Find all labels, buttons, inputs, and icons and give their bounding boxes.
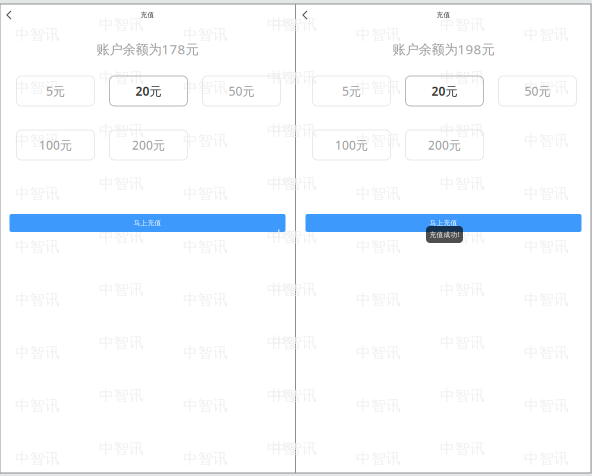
staticText: 中智讯 — [267, 386, 312, 404]
staticText: 中智讯 — [99, 333, 144, 351]
button[interactable]: 5元 — [16, 76, 94, 106]
staticText: 中智讯 — [99, 68, 144, 86]
staticText: 中智讯 — [183, 131, 228, 149]
staticText: 50元 — [524, 83, 550, 99]
staticText: 中智讯 — [440, 333, 485, 351]
button[interactable]: 200元 — [405, 130, 483, 160]
staticText: 中智讯 — [267, 121, 312, 139]
staticText: 50元 — [228, 83, 254, 99]
staticText: 中智讯 — [272, 68, 317, 86]
staticText: 中智讯 — [15, 131, 60, 149]
staticText: 中智讯 — [440, 68, 485, 86]
staticText: 中智讯 — [524, 184, 569, 202]
staticText: 中智讯 — [524, 78, 569, 96]
staticText: 中智讯 — [524, 449, 569, 467]
staticText: 充值 — [140, 11, 154, 19]
staticText: 中智讯 — [272, 280, 317, 298]
button[interactable]: 50元 — [498, 76, 576, 106]
button[interactable]: 20元 — [109, 76, 187, 106]
staticText: 中智讯 — [183, 78, 228, 96]
staticText: 100元 — [335, 137, 368, 153]
staticText: 中智讯 — [99, 386, 144, 404]
staticText: 中智讯 — [356, 25, 401, 43]
staticText: 充值成功! — [429, 230, 459, 239]
staticText: 中智讯 — [15, 396, 60, 414]
button[interactable]: 50元 — [202, 76, 280, 106]
staticText: 20元 — [135, 83, 161, 99]
button[interactable]: 200元 — [109, 130, 187, 160]
staticText: 账户余额为178元 — [96, 40, 198, 58]
button[interactable]: 100元 — [312, 130, 390, 160]
staticText: 中智讯 — [356, 78, 401, 96]
button[interactable]: Back — [0, 6, 18, 24]
staticText: 中智讯 — [15, 237, 60, 255]
staticText: 中智讯 — [440, 174, 485, 192]
staticText: 200元 — [132, 137, 165, 153]
staticText: 中智讯 — [440, 280, 485, 298]
staticText: 充值 — [436, 11, 450, 19]
button[interactable]: 马上充值 — [305, 214, 581, 232]
staticText: 中智讯 — [99, 121, 144, 139]
staticText: 中智讯 — [99, 227, 144, 245]
staticText: 中智讯 — [351, 290, 396, 308]
staticText: 中智讯 — [356, 290, 401, 308]
staticText: 中智讯 — [351, 343, 396, 361]
staticText: 中智讯 — [15, 343, 60, 361]
staticText: 马上充值 — [133, 219, 161, 227]
staticText: 中智讯 — [267, 174, 312, 192]
staticText: 中智讯 — [356, 449, 401, 467]
staticText: 20元 — [431, 83, 457, 99]
staticText: 中智讯 — [183, 343, 228, 361]
staticText: 5元 — [342, 83, 361, 99]
staticText: 中智讯 — [272, 174, 317, 192]
staticText: 中智讯 — [351, 78, 396, 96]
staticText: 中智讯 — [15, 25, 60, 43]
staticText: 中智讯 — [440, 15, 485, 33]
staticText: 中智讯 — [267, 280, 312, 298]
staticText: 中智讯 — [267, 15, 312, 33]
staticText: 中智讯 — [356, 131, 401, 149]
staticText: 中智讯 — [440, 386, 485, 404]
button[interactable]: 20元 — [405, 76, 483, 106]
staticText: 中智讯 — [99, 280, 144, 298]
staticText: 中智讯 — [356, 343, 401, 361]
button[interactable]: Back — [296, 6, 314, 24]
staticText: 中智讯 — [183, 290, 228, 308]
staticText: 200元 — [428, 137, 461, 153]
staticText: 中智讯 — [15, 78, 60, 96]
staticText: 账户余额为198元 — [392, 40, 494, 58]
staticText: 中智讯 — [272, 333, 317, 351]
staticText: 中智讯 — [524, 343, 569, 361]
staticText: 中智讯 — [15, 449, 60, 467]
staticText: 中智讯 — [267, 227, 312, 245]
button[interactable]: 100元 — [16, 130, 94, 160]
staticText: 中智讯 — [272, 227, 317, 245]
staticText: 中智讯 — [524, 237, 569, 255]
staticText: 中智讯 — [272, 121, 317, 139]
staticText: 中智讯 — [351, 237, 396, 255]
staticText: 中智讯 — [272, 439, 317, 457]
staticText: 中智讯 — [183, 237, 228, 255]
staticText: 中智讯 — [15, 290, 60, 308]
button[interactable]: 5元 — [312, 76, 390, 106]
staticText: 中智讯 — [183, 25, 228, 43]
staticText: 中智讯 — [183, 396, 228, 414]
staticText: 中智讯 — [356, 237, 401, 255]
staticText: 中智讯 — [356, 396, 401, 414]
staticText: 马上充值 — [429, 219, 457, 227]
staticText: 中智讯 — [272, 386, 317, 404]
staticText: 中智讯 — [99, 174, 144, 192]
staticText: 中智讯 — [524, 25, 569, 43]
staticText: 中智讯 — [272, 15, 317, 33]
staticText: 中智讯 — [524, 290, 569, 308]
button[interactable]: 马上充值 — [9, 214, 285, 232]
staticText: 中智讯 — [267, 333, 312, 351]
staticText: 中智讯 — [351, 131, 396, 149]
staticText: 中智讯 — [267, 439, 312, 457]
staticText: 中智讯 — [524, 396, 569, 414]
staticText: 中智讯 — [183, 184, 228, 202]
staticText: 5元 — [46, 83, 65, 99]
staticText: 中智讯 — [351, 25, 396, 43]
staticText: 中智讯 — [351, 396, 396, 414]
staticText: 中智讯 — [183, 449, 228, 467]
